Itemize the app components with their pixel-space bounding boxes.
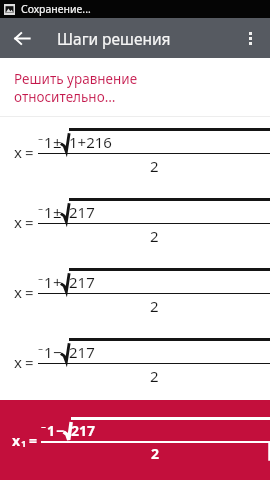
staticText: 2 [150, 296, 159, 316]
staticText: Решить уравнение относительно… [14, 70, 138, 106]
staticText: = [25, 212, 34, 232]
staticText: ⁻ [41, 421, 47, 440]
staticText: Шаги решения [57, 28, 171, 49]
button[interactable]: x [0, 327, 270, 397]
staticText: 1 [44, 342, 53, 362]
staticText: − [56, 421, 65, 440]
staticText: − [53, 342, 62, 362]
staticText: 217 [69, 272, 95, 292]
staticText: 1 [44, 202, 53, 222]
button[interactable]: More options [234, 22, 266, 54]
staticText: 217 [69, 202, 95, 222]
staticText: x [14, 282, 22, 302]
staticText: 2 [150, 226, 159, 246]
staticText: ⁻ [38, 132, 44, 152]
button[interactable]: Решить уравнение относительно… [0, 58, 270, 116]
button[interactable]: x [0, 187, 270, 257]
staticText: 2 [151, 444, 160, 463]
button[interactable]: x [0, 400, 270, 480]
staticText: x [14, 212, 22, 232]
staticText: = [25, 142, 34, 162]
staticText: ⁻ [38, 272, 44, 292]
staticText: + [53, 272, 62, 292]
staticText: 1 [21, 437, 27, 450]
staticText: Сохранение... [21, 2, 91, 16]
other: Saving image [4, 4, 15, 15]
staticText: = [25, 282, 34, 302]
staticText: ± [53, 132, 62, 152]
staticText: 2 [150, 156, 159, 176]
staticText: 1 [44, 272, 53, 292]
button[interactable]: x [0, 257, 270, 327]
staticText: x [12, 431, 21, 450]
staticText: ± [53, 202, 62, 222]
button[interactable]: x [0, 117, 270, 187]
staticText: = [25, 352, 34, 372]
staticText: 1+216 [69, 132, 112, 152]
staticText: x [14, 142, 22, 162]
staticText: 217 [69, 342, 95, 362]
staticText: 1 [47, 421, 56, 440]
staticText: 2 [150, 366, 159, 386]
staticText: x [14, 352, 22, 372]
staticText: 1 [44, 132, 53, 152]
staticText: = [29, 431, 38, 450]
staticText: ⁻ [38, 202, 44, 222]
staticText: 217 [71, 421, 96, 440]
button[interactable]: Back [6, 22, 38, 54]
staticText: ⁻ [38, 342, 44, 362]
